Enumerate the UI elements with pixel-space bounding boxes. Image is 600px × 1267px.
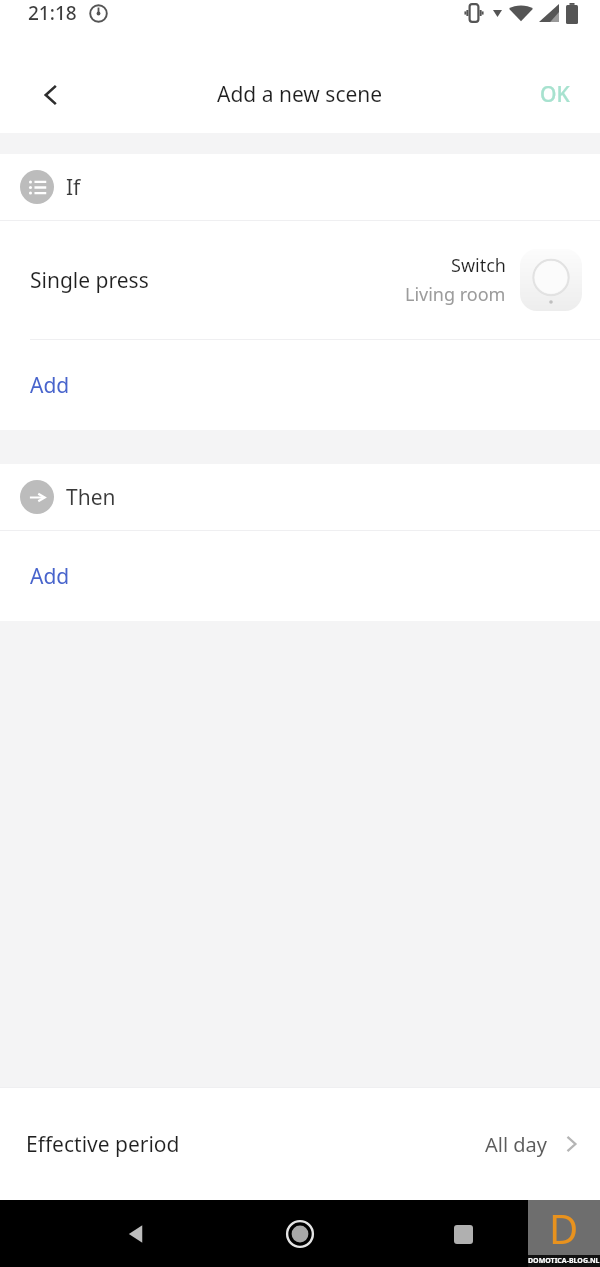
staticText: Add a new scene — [217, 80, 383, 109]
button[interactable]: If — [0, 154, 600, 220]
button[interactable]: Back — [26, 69, 78, 121]
staticText: Effective period — [26, 1130, 180, 1159]
staticText: Switch — [451, 253, 506, 278]
staticText: All day — [485, 1131, 548, 1158]
button[interactable]: OK — [524, 70, 586, 119]
staticText: Add — [30, 371, 70, 400]
button[interactable]: Add — [0, 531, 600, 621]
button[interactable]: Then — [0, 464, 600, 530]
staticText: 21:18 — [28, 0, 77, 26]
button[interactable]: Single press — [0, 221, 600, 339]
staticText: Single press — [30, 266, 149, 295]
staticText: DOMOTICA-BLOG.NL — [528, 1256, 600, 1266]
button[interactable]: Recents — [437, 1208, 489, 1260]
button[interactable]: Home — [274, 1208, 326, 1260]
button[interactable]: Add — [0, 340, 600, 430]
staticText: D — [549, 1201, 579, 1255]
staticText: Living room — [405, 282, 506, 307]
staticText: If — [66, 173, 81, 202]
staticText: Then — [66, 483, 116, 512]
button[interactable]: Effective period — [0, 1088, 600, 1200]
staticText: OK — [540, 80, 570, 109]
button[interactable]: Back — [111, 1208, 163, 1260]
staticText: Add — [30, 562, 70, 591]
